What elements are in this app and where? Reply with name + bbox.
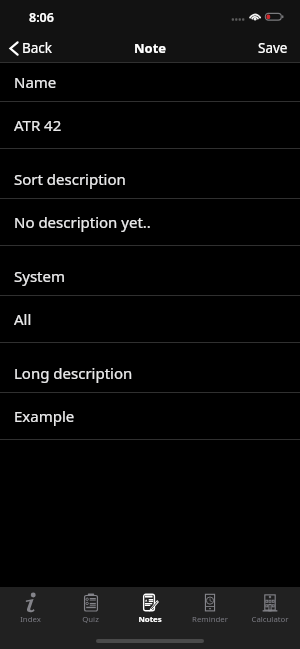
button[interactable]: Reminder [180, 587, 240, 623]
button[interactable]: System [0, 257, 300, 295]
staticText: Back [22, 39, 53, 57]
button[interactable]: Notes [120, 587, 180, 623]
button[interactable]: No description yet.. [0, 199, 300, 245]
button[interactable]: Quiz [60, 587, 120, 623]
button[interactable]: Long description [0, 354, 300, 392]
button[interactable]: Back [0, 39, 61, 57]
button[interactable]: Save [248, 39, 300, 57]
staticText: Notes [138, 614, 162, 623]
staticText: Quiz [82, 614, 99, 623]
button[interactable]: Index [0, 587, 60, 623]
staticText: ATR 42 [14, 115, 62, 135]
staticText: No description yet.. [14, 212, 151, 232]
staticText: All [14, 309, 32, 329]
button[interactable]: Example [0, 393, 300, 439]
button[interactable]: Name [0, 63, 300, 101]
staticText: Name [14, 72, 57, 92]
staticText: Sort description [14, 169, 126, 189]
staticText: 8:06 [29, 9, 54, 26]
staticText: Long description [14, 363, 133, 383]
staticText: Reminder [192, 614, 228, 623]
staticText: Note [134, 39, 167, 57]
button[interactable]: Calculator [240, 587, 300, 623]
button[interactable]: Sort description [0, 160, 300, 198]
staticText: System [14, 266, 65, 286]
staticText: Calculator [251, 614, 289, 623]
button[interactable]: All [0, 296, 300, 342]
button[interactable]: ATR 42 [0, 102, 300, 148]
staticText: Index [20, 614, 41, 623]
staticText: Example [14, 406, 75, 426]
